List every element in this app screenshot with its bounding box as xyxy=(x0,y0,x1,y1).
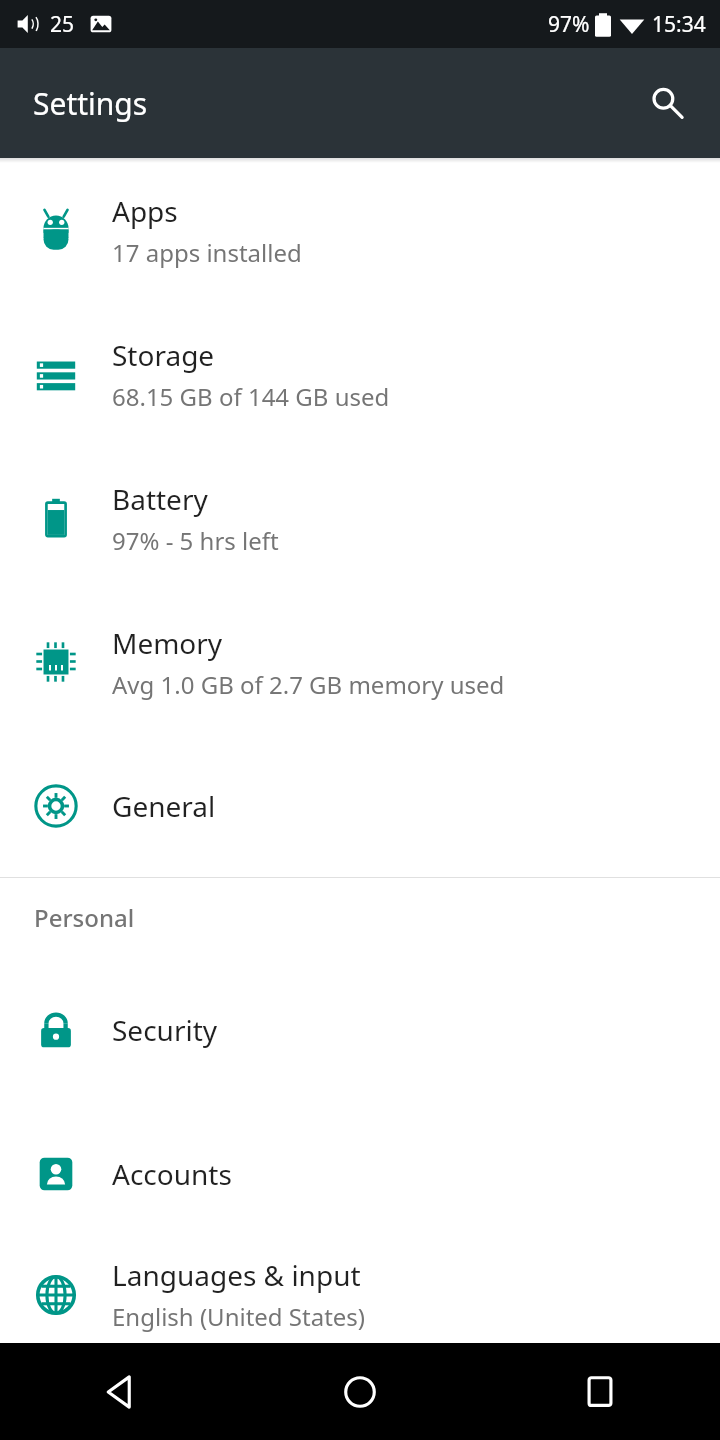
staticText: General xyxy=(112,787,216,825)
button[interactable]: Storage xyxy=(0,302,720,446)
staticText: 25 xyxy=(50,10,75,39)
button[interactable]: Memory xyxy=(0,590,720,734)
staticText: Personal xyxy=(34,901,135,934)
staticText: Battery xyxy=(112,480,208,518)
button[interactable]: Back xyxy=(0,1343,240,1440)
staticText: Accounts xyxy=(112,1155,232,1193)
staticText: Security xyxy=(112,1011,218,1049)
button[interactable]: Recent apps xyxy=(480,1343,720,1440)
staticText: Memory xyxy=(112,624,223,662)
button[interactable]: Search xyxy=(639,75,695,131)
staticText: 68.15 GB of 144 GB used xyxy=(112,380,390,413)
button[interactable]: Home xyxy=(240,1343,480,1440)
button[interactable]: Apps xyxy=(0,158,720,302)
staticText: Settings xyxy=(33,83,148,124)
staticText: 15:34 xyxy=(652,10,706,39)
button[interactable]: General xyxy=(0,734,720,877)
staticText: Apps xyxy=(112,192,178,230)
staticText: Avg 1.0 GB of 2.7 GB memory used xyxy=(112,668,505,701)
staticText: 97% xyxy=(548,10,590,39)
button[interactable]: Languages & input xyxy=(0,1246,720,1343)
button[interactable]: Security xyxy=(0,957,720,1102)
staticText: 17 apps installed xyxy=(112,236,302,269)
staticText: English (United States) xyxy=(112,1300,366,1333)
button[interactable]: Accounts xyxy=(0,1102,720,1246)
staticText: Storage xyxy=(112,336,215,374)
staticText: Languages & input xyxy=(112,1256,361,1294)
button[interactable]: Battery xyxy=(0,446,720,590)
staticText: 97% - 5 hrs left xyxy=(112,524,279,557)
